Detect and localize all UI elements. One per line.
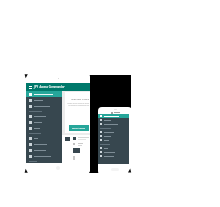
staticText: READ MORE [72, 127, 86, 130]
button[interactable] [98, 114, 129, 118]
button[interactable] [98, 138, 129, 142]
staticText: Lorem ipsum dolor sit amet consectetur a… [67, 102, 89, 106]
button[interactable] [26, 113, 62, 119]
button[interactable] [98, 154, 129, 158]
button[interactable]: READ MORE [69, 125, 89, 131]
button[interactable] [26, 91, 62, 97]
button[interactable] [98, 118, 129, 122]
button[interactable] [26, 135, 62, 141]
button[interactable] [98, 150, 129, 154]
button[interactable] [98, 134, 129, 138]
staticText: SPECIFIC CASES [71, 97, 89, 100]
button[interactable] [26, 125, 62, 131]
button[interactable] [26, 153, 62, 159]
button[interactable] [98, 146, 129, 150]
button[interactable] [26, 147, 62, 153]
staticText: JPY Access Commander [34, 85, 65, 89]
button[interactable] [26, 141, 62, 147]
button[interactable] [98, 130, 129, 134]
button[interactable] [26, 97, 62, 103]
button[interactable] [98, 122, 129, 126]
button[interactable] [26, 119, 62, 125]
button[interactable] [26, 103, 62, 109]
button[interactable]: Menu [29, 86, 32, 89]
